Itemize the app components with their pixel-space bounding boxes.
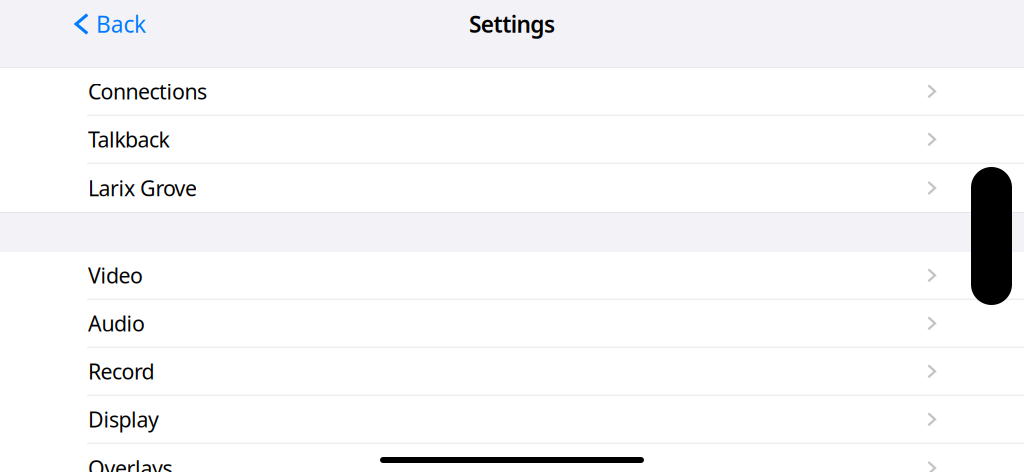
button[interactable]: Record	[0, 348, 1024, 396]
staticText: Larix Grove	[88, 174, 197, 202]
staticText: Record	[88, 357, 154, 385]
button[interactable]: Audio	[0, 300, 1024, 348]
staticText: Audio	[88, 309, 145, 337]
button[interactable]: Back	[0, 0, 160, 48]
staticText: Display	[88, 405, 159, 433]
button[interactable]: Connections	[0, 68, 1024, 116]
staticText: Settings	[469, 9, 555, 39]
button[interactable]: Display	[0, 396, 1024, 444]
button[interactable]: Overlays	[0, 444, 1024, 472]
staticText: Overlays	[88, 454, 172, 472]
staticText: Connections	[88, 77, 207, 105]
staticText: Talkback	[88, 125, 169, 153]
staticText: Video	[88, 261, 143, 289]
button[interactable]: Video	[0, 252, 1024, 300]
button[interactable]: Larix Grove	[0, 164, 1024, 212]
button[interactable]: Talkback	[0, 116, 1024, 164]
staticText: Back	[96, 9, 146, 39]
